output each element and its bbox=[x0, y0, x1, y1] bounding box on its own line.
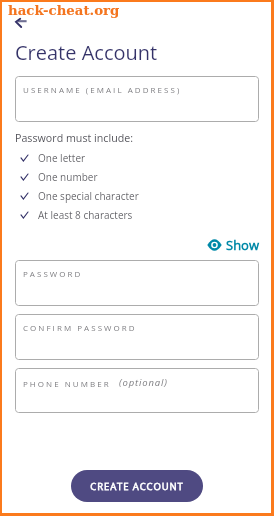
staticText: Create Account bbox=[15, 39, 158, 66]
staticText: PHONE NUMBER bbox=[23, 378, 119, 389]
button[interactable]: CONFIRM PASSWORD bbox=[15, 314, 259, 360]
staticText: (optional) bbox=[119, 376, 168, 389]
staticText: Show bbox=[226, 236, 259, 254]
button[interactable]: Back bbox=[10, 11, 34, 35]
button[interactable]: PASSWORD bbox=[15, 260, 259, 306]
staticText: CREATE ACCOUNT bbox=[90, 480, 184, 493]
staticText: One letter bbox=[38, 151, 86, 165]
staticText: hack-cheat.org bbox=[8, 3, 120, 19]
staticText: Password must include: bbox=[15, 131, 134, 146]
button[interactable]: PHONE NUMBER bbox=[15, 368, 259, 413]
button[interactable]: Show bbox=[207, 236, 259, 254]
button[interactable]: CREATE ACCOUNT bbox=[71, 470, 203, 502]
staticText: One number bbox=[38, 170, 98, 184]
staticText: One special character bbox=[38, 189, 139, 203]
button[interactable]: USERNAME (EMAIL ADDRESS) bbox=[15, 76, 259, 122]
staticText: CONFIRM PASSWORD bbox=[23, 322, 137, 333]
staticText: At least 8 characters bbox=[38, 208, 133, 222]
staticText: PASSWORD bbox=[23, 268, 83, 279]
staticText: USERNAME (EMAIL ADDRESS) bbox=[23, 84, 182, 95]
